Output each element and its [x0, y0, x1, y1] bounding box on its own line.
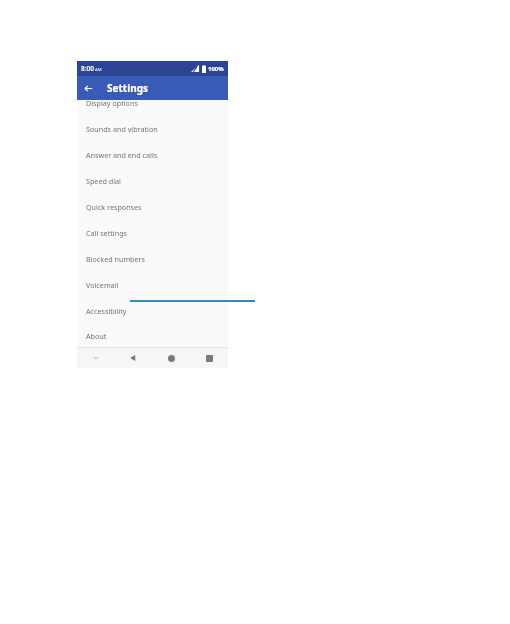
button[interactable]: Call settings — [77, 220, 228, 246]
staticText: Answer and end calls — [86, 150, 158, 160]
staticText: Settings — [107, 81, 148, 95]
button[interactable]: Speed dial — [77, 168, 228, 194]
button[interactable]: Sounds and vibration — [77, 116, 228, 142]
staticText: Display options — [86, 98, 138, 108]
staticText: Blocked numbers — [86, 254, 145, 264]
staticText: Accessibility — [86, 306, 127, 316]
button[interactable]: Voicemail — [77, 272, 228, 298]
button[interactable]: Quick responses — [77, 194, 228, 220]
staticText: Call settings — [86, 228, 127, 238]
staticText: Speed dial — [86, 176, 121, 186]
button[interactable]: Accessibility — [77, 298, 228, 324]
button[interactable]: Display options — [77, 90, 228, 116]
staticText: Sounds and vibration — [86, 124, 158, 134]
staticText: 8:00 — [81, 64, 94, 73]
button[interactable]: Answer and end calls — [77, 142, 228, 168]
button[interactable]: Recent apps — [190, 348, 228, 368]
button[interactable]: Back — [114, 348, 152, 368]
button[interactable]: Blocked numbers — [77, 246, 228, 272]
button[interactable]: Back — [77, 77, 99, 99]
button[interactable]: Home — [152, 348, 190, 368]
staticText: AM — [95, 67, 102, 73]
staticText: About — [86, 331, 107, 341]
staticText: 100% — [208, 65, 224, 73]
staticText: Voicemail — [86, 280, 119, 290]
button[interactable]: About — [77, 324, 228, 347]
button[interactable]: Hide — [77, 348, 114, 368]
staticText: Quick responses — [86, 202, 142, 212]
